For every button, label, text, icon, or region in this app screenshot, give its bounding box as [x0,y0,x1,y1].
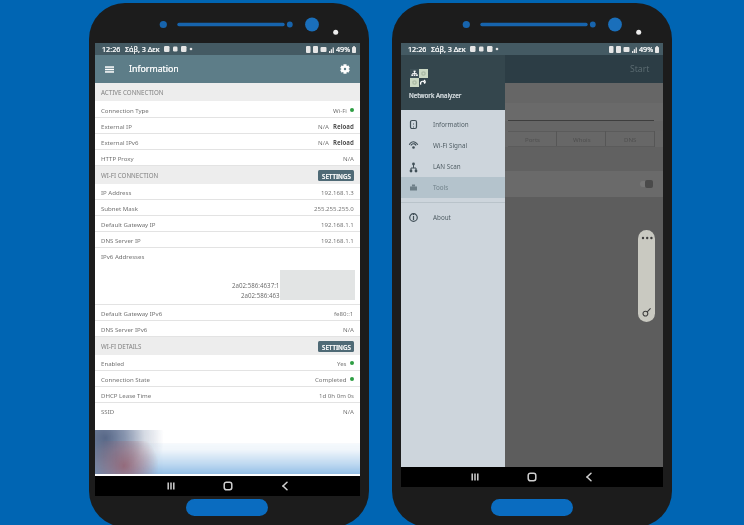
button[interactable]: Wi-Fi Signal [401,135,505,156]
button[interactable]: DHCP Lease Time [95,387,360,402]
staticText: DNS Server IP [101,236,141,244]
staticText: Network Analyzer [409,91,462,100]
staticText: About [433,213,451,222]
staticText: SETTINGS [322,172,351,180]
staticText: Default Gateway IPv6 [101,309,163,317]
staticText: Default Gateway IP [101,220,156,228]
button[interactable]: DNS Server IP [95,232,360,247]
staticText: Σάβ, 3 Δεκ [431,44,466,54]
staticText: 2a02:586:4637:1 [232,281,280,289]
staticText: Reload [333,138,354,146]
staticText: DNS [624,135,637,143]
button[interactable]: Whois [557,131,606,147]
staticText: Subnet Mask [101,204,138,212]
button[interactable]: Recents [466,467,484,487]
staticText: Wi-Fi Signal [433,141,468,150]
button[interactable]: Default Gateway IP [95,216,360,231]
staticText: DNS Server IPv6 [101,325,148,333]
staticText: 192.168.1.1 [321,220,354,228]
staticText: Start [630,63,650,75]
button[interactable]: Default Gateway IPv6 [95,305,360,320]
staticText: N/A [343,154,354,162]
staticText: External IPv6 [101,138,139,146]
button[interactable]: DNS [606,131,655,147]
staticText: 2a02:586:463 [241,291,280,299]
staticText: SETTINGS [322,343,351,351]
staticText: 49% [336,44,351,54]
staticText: Ports [525,135,541,143]
button[interactable]: Connection State [95,371,360,386]
staticText: WI-FI CONNECTION [101,171,159,179]
button[interactable]: Ports [508,131,557,147]
staticText: 49% [639,44,654,54]
staticText: N/A [343,407,354,415]
button[interactable]: SETTINGS [318,341,354,352]
staticText: IP Address [101,188,132,196]
staticText: 192.168.1.3 [321,188,354,196]
button[interactable]: DNS Server IPv6 [95,321,360,336]
button[interactable]: Information [401,114,505,135]
staticText: Yes [337,359,347,367]
staticText: Σάβ, 3 Δεκ [125,44,160,54]
staticText: Tools [433,183,449,192]
staticText: Enabled [101,359,125,367]
button[interactable]: More options [638,230,655,322]
staticText: 12:26 [102,44,121,54]
staticText: Information [129,63,179,75]
button[interactable]: Toggle [639,180,653,188]
button[interactable]: Back [580,467,598,487]
staticText: Completed [315,375,347,383]
button[interactable]: IP Address [95,184,360,199]
staticText: DHCP Lease Time [101,391,152,399]
button[interactable]: Back [276,476,294,496]
button[interactable]: External IP [95,118,360,133]
staticText: External IP [101,122,132,130]
button[interactable]: SETTINGS [318,170,354,181]
staticText: 255.255.255.0 [314,204,354,212]
staticText: 192.168.1.1 [321,236,354,244]
staticText: Connection Type [101,106,149,114]
button[interactable]: About [401,207,505,228]
button[interactable]: Home [523,467,541,487]
button[interactable]: Subnet Mask [95,200,360,215]
button[interactable]: HTTP Proxy [95,150,360,165]
staticText: Whois [573,135,591,143]
staticText: IPv6 Addresses [101,252,145,260]
staticText: ACTIVE CONNECTION [101,88,164,96]
staticText: 12:26 [408,44,427,54]
staticText: N/A [318,122,329,130]
staticText: WI-FI DETAILS [101,342,142,350]
button[interactable]: SSID [95,403,360,418]
button[interactable]: Tools [401,177,505,198]
button[interactable]: Recents [162,476,180,496]
button[interactable]: Menu [102,62,117,77]
button[interactable]: Connection Type [95,102,360,117]
staticText: SSID [101,407,115,415]
staticText: Wi-Fi [333,106,347,114]
button[interactable]: Enabled [95,355,360,370]
button[interactable]: LAN Scan [401,156,505,177]
staticText: Reload [333,122,354,130]
button[interactable]: Settings [340,64,350,74]
staticText: 1d 0h 0m 0s [319,391,354,399]
button[interactable]: External IPv6 [95,134,360,149]
button[interactable]: Home [219,476,237,496]
staticText: fe80::1 [334,309,354,317]
staticText: Connection State [101,375,150,383]
staticText: LAN Scan [433,162,461,171]
staticText: N/A [343,325,354,333]
staticText: HTTP Proxy [101,154,134,162]
staticText: N/A [318,138,329,146]
staticText: Information [433,120,469,129]
